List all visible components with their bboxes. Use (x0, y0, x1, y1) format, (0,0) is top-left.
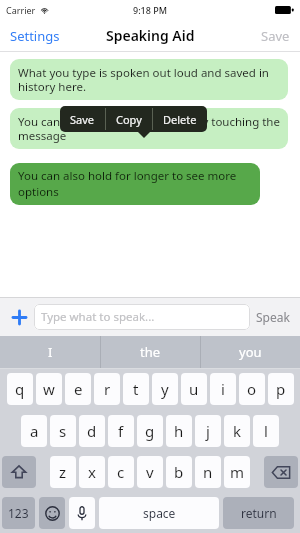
staticText: Save (70, 112, 95, 127)
staticText: Delete (163, 112, 197, 127)
staticText: f (118, 421, 124, 441)
button[interactable]: Copy (106, 106, 152, 132)
button[interactable]: h (166, 415, 192, 447)
button[interactable]: m (224, 456, 250, 488)
staticText: p (276, 379, 286, 399)
button[interactable]: r (94, 373, 120, 405)
button[interactable]: Add (8, 306, 30, 328)
staticText: Speak (256, 309, 290, 325)
staticText: What you type is spoken out loud and sav… (18, 65, 280, 94)
staticText: v (146, 462, 154, 482)
staticText: l (264, 421, 268, 441)
button[interactable]: 123 (2, 497, 35, 529)
staticText: c (117, 462, 125, 482)
staticText: s (59, 421, 67, 441)
button[interactable]: Save (60, 106, 105, 132)
staticText: Save (261, 27, 290, 45)
button[interactable]: Delete (153, 106, 207, 132)
button[interactable]: o (239, 373, 265, 405)
button[interactable]: return (223, 497, 294, 529)
button[interactable]: a (21, 415, 47, 447)
staticText: e (74, 379, 83, 399)
button[interactable]: x (79, 456, 105, 488)
staticText: t (133, 379, 139, 399)
staticText: i (221, 379, 225, 399)
button[interactable]: Shift (2, 456, 36, 488)
button[interactable]: t (123, 373, 149, 405)
staticText: b (174, 462, 184, 482)
button[interactable]: Type what to speak... (34, 304, 250, 330)
button[interactable]: p (268, 373, 294, 405)
button[interactable]: v (137, 456, 163, 488)
staticText: 123 (8, 505, 29, 521)
button[interactable]: k (224, 415, 250, 447)
staticText: I (48, 343, 53, 361)
staticText: z (59, 462, 67, 482)
button[interactable]: g (137, 415, 163, 447)
button[interactable]: Save (261, 20, 290, 51)
staticText: u (189, 379, 199, 399)
button[interactable]: d (79, 415, 105, 447)
staticText: you (239, 343, 262, 361)
button[interactable]: You can re-speak a message simply touchi… (10, 108, 288, 149)
staticText: the (140, 343, 161, 361)
staticText: w (43, 379, 55, 399)
button[interactable]: w (36, 373, 62, 405)
button[interactable]: Settings (10, 20, 60, 51)
staticText: 9:18 PM (133, 4, 167, 16)
button[interactable]: n (195, 456, 221, 488)
staticText: Copy (116, 112, 142, 127)
staticText: Settings (10, 27, 60, 45)
button[interactable]: i (210, 373, 236, 405)
staticText: j (206, 421, 210, 441)
staticText: y (161, 379, 169, 399)
button[interactable]: c (108, 456, 134, 488)
staticText: o (247, 379, 257, 399)
staticText: x (88, 462, 96, 482)
staticText: You can re-speak a message simply touchi… (18, 114, 280, 143)
button[interactable]: You can also hold for longer to see more… (10, 163, 260, 205)
button[interactable]: I (0, 336, 100, 368)
button[interactable]: u (181, 373, 207, 405)
staticText: g (145, 421, 155, 441)
staticText: m (230, 462, 245, 482)
button[interactable]: you (201, 336, 300, 368)
staticText: n (203, 462, 213, 482)
staticText: space (143, 505, 176, 521)
button[interactable]: q (7, 373, 33, 405)
staticText: k (233, 421, 242, 441)
button[interactable]: l (253, 415, 279, 447)
button[interactable]: y (152, 373, 178, 405)
staticText: h (174, 421, 184, 441)
button[interactable]: e (65, 373, 91, 405)
staticText: r (104, 379, 111, 399)
button[interactable]: the (101, 336, 200, 368)
button[interactable]: Dictation (69, 497, 95, 529)
button[interactable]: What you type is spoken out loud and sav… (10, 59, 288, 100)
staticText: Type what to speak... (41, 309, 155, 325)
button[interactable]: f (108, 415, 134, 447)
button[interactable]: Delete (264, 456, 298, 488)
button[interactable]: s (50, 415, 76, 447)
button[interactable]: Emoji (39, 497, 65, 529)
staticText: return (241, 505, 277, 521)
staticText: q (15, 379, 25, 399)
button[interactable]: j (195, 415, 221, 447)
button[interactable]: Speak (256, 304, 292, 330)
staticText: Carrier (6, 4, 36, 16)
staticText: You can also hold for longer to see more… (18, 168, 252, 200)
staticText: a (30, 421, 39, 441)
staticText: d (87, 421, 97, 441)
staticText: Speaking Aid (106, 26, 195, 45)
button[interactable]: b (166, 456, 192, 488)
button[interactable]: z (50, 456, 76, 488)
button[interactable]: space (99, 497, 219, 529)
